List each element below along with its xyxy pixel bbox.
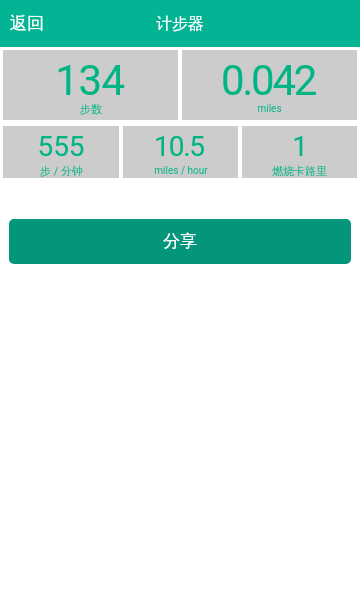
button[interactable]: 1 [242,126,357,178]
staticText: miles [257,103,282,115]
staticText: 134 [55,56,125,105]
staticText: 返回 [10,13,44,34]
staticText: 10.5 [154,130,204,163]
button[interactable]: 分享 [9,219,351,264]
staticText: 步 / 分钟 [40,164,83,178]
staticText: 步数 [80,102,102,116]
button[interactable]: 0.042 [182,50,357,120]
staticText: 555 [37,130,85,163]
staticText: 1 [292,130,308,163]
button[interactable]: 134 [3,50,178,120]
staticText: 0.042 [221,56,315,105]
staticText: 计步器 [156,14,204,34]
staticText: 分享 [163,231,197,252]
button[interactable]: 10.5 [123,126,238,178]
staticText: 燃烧卡路里 [272,164,327,178]
button[interactable]: 返回 [0,2,54,45]
staticText: miles / hour [154,165,208,177]
button[interactable]: 555 [3,126,119,178]
